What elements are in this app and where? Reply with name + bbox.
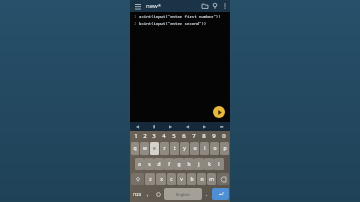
button[interactable]: z [145,173,155,185]
staticText: t [174,145,176,152]
button[interactable]: Toolbar key 0 [130,122,146,131]
button[interactable]: Hints [210,1,220,11]
button[interactable]: 0 [219,132,229,140]
button[interactable]: d [154,158,164,170]
staticText: ▮ [153,124,156,129]
button[interactable]: n [197,173,206,185]
button[interactable]: Toolbar key 3 [179,122,196,131]
button[interactable]: !123 [131,187,143,201]
button[interactable]: p [220,142,229,155]
staticText: z [149,176,152,183]
button[interactable]: a [135,158,144,170]
button[interactable]: t [170,142,179,155]
staticText: g [177,161,181,168]
button[interactable]: 3 [149,132,159,140]
button[interactable]: 1 [131,132,140,140]
staticText: i [204,145,206,152]
button[interactable]: English [164,188,202,200]
staticText: ◀ [136,124,140,129]
button[interactable]: More options [220,1,229,11]
button[interactable]: f [164,158,174,170]
button[interactable]: c [167,173,176,185]
button[interactable]: Toolbar key 4 [196,122,213,131]
staticText: ▶ [169,124,173,129]
button[interactable]: v [177,173,186,185]
staticText: new* [146,2,161,10]
staticText: 0 [222,132,226,140]
button[interactable]: Run [213,106,225,118]
button[interactable]: 4 [159,132,169,140]
staticText: v [180,176,183,183]
staticText: . [206,191,208,198]
staticText: h [187,161,191,168]
staticText: 7 [192,132,196,140]
button[interactable]: s [144,158,154,170]
button[interactable]: j [194,158,204,170]
button[interactable]: 6 [179,132,189,140]
staticText: ◀ [186,124,190,129]
button[interactable]: u [190,142,199,155]
staticText: , [147,191,149,198]
button[interactable]: y [180,142,189,155]
staticText: 1 [134,14,137,19]
button[interactable]: Settings [153,187,163,201]
button[interactable]: g [174,158,184,170]
staticText: u [193,145,197,152]
staticText: o [213,145,217,152]
button[interactable]: b [187,173,196,185]
staticText: 5 [172,132,176,140]
staticText: m [209,176,214,183]
staticText: b [190,176,194,183]
staticText: 8 [202,132,206,140]
button[interactable]: Enter [212,188,229,200]
staticText: c [170,176,173,183]
button[interactable]: m [207,173,216,185]
button[interactable]: 5 [169,132,179,140]
staticText: ▬ [220,124,224,129]
button[interactable]: 2 [140,132,149,140]
button[interactable]: r [160,142,169,155]
staticText: f [168,161,170,168]
button[interactable]: Open file [200,1,210,11]
button[interactable]: Period [203,187,211,201]
button[interactable]: Toolbar key 1 [146,122,162,131]
button[interactable]: Comma [144,187,152,201]
button[interactable]: Toolbar key 2 [162,122,179,131]
staticText: a [138,161,141,168]
button[interactable]: Open navigation menu [133,2,142,11]
button[interactable]: l [214,158,224,170]
staticText: 2 [143,132,147,140]
staticText: n [200,176,204,183]
staticText: d [157,161,161,168]
staticText: a=int(input("enter first number")) [139,14,221,19]
staticText: l [218,161,220,168]
staticText: 1 [134,132,138,140]
staticText: English [176,192,190,197]
button[interactable]: q [131,142,139,155]
staticText: b=int(input("enter second")) [139,21,207,26]
button[interactable]: 7 [189,132,199,140]
button[interactable]: x [156,173,166,185]
staticText: 2 [134,21,137,26]
button[interactable]: Toolbar key 5 [213,122,230,131]
button[interactable]: Shift [131,173,144,185]
staticText: r [163,145,166,152]
staticText: s [148,161,151,168]
staticText: 4 [162,132,166,140]
staticText: ▶ [203,124,207,129]
staticText: w [143,145,147,152]
button[interactable]: Backspace [217,173,229,185]
button[interactable]: e [150,142,159,155]
button[interactable]: 9 [209,132,219,140]
button[interactable]: o [210,142,219,155]
staticText: j [198,161,200,168]
staticText: k [208,161,211,168]
staticText: !123 [133,192,141,197]
staticText: 9 [212,132,216,140]
button[interactable]: w [140,142,149,155]
button[interactable]: h [184,158,194,170]
button[interactable]: i [200,142,209,155]
button[interactable]: k [204,158,214,170]
staticText: 6 [182,132,186,140]
button[interactable]: 8 [199,132,209,140]
